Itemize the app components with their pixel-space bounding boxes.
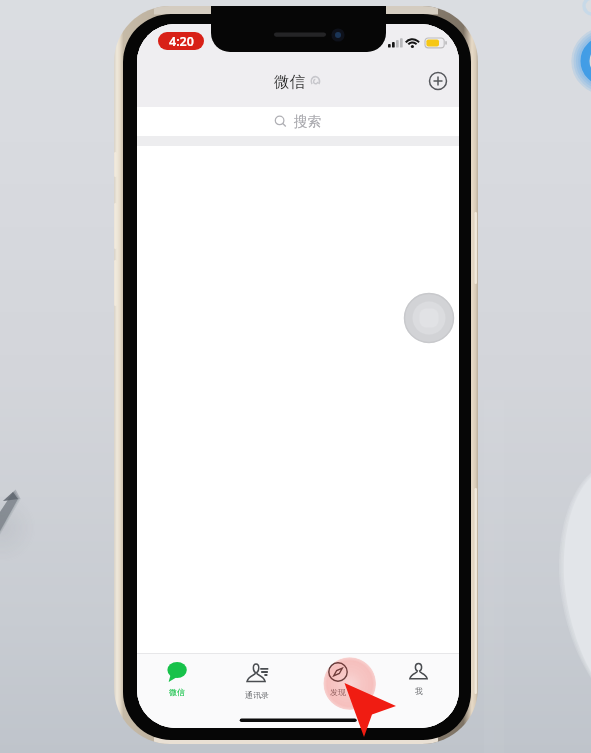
staticText: 搜索	[294, 113, 321, 130]
staticText: 我	[415, 686, 423, 696]
button[interactable]: 通讯录	[217, 659, 297, 709]
staticText: 4:20	[169, 33, 194, 50]
button[interactable]: 我	[378, 659, 459, 709]
button[interactable]: Add	[425, 68, 451, 94]
button[interactable]: 微信	[137, 659, 217, 709]
button[interactable]: 发现	[297, 659, 378, 709]
staticText: 微信	[169, 687, 185, 697]
staticText: 发现	[330, 687, 346, 697]
button[interactable]: 搜索	[142, 107, 456, 136]
button[interactable]: AssistiveTouch	[404, 293, 454, 343]
staticText: 通讯录	[245, 690, 269, 700]
staticText: 微信	[274, 72, 305, 92]
